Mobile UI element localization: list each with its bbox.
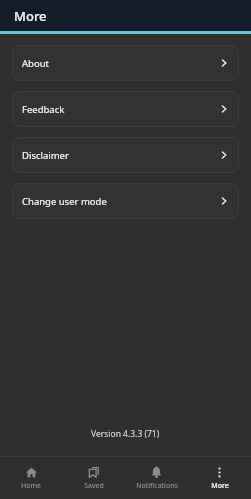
staticText: Version 4.3.3 (71): [91, 428, 160, 440]
button[interactable]: Change user mode: [12, 183, 239, 219]
staticText: Notifications: [136, 481, 178, 491]
staticText: Feedback: [22, 103, 219, 116]
staticText: Saved: [84, 481, 104, 491]
button[interactable]: Saved: [62, 457, 125, 499]
staticText: Change user mode: [22, 195, 219, 208]
button[interactable]: About: [12, 45, 239, 81]
button[interactable]: More: [188, 457, 251, 499]
staticText: Disclaimer: [22, 149, 219, 162]
staticText: More: [211, 481, 229, 491]
staticText: About: [22, 57, 219, 70]
staticText: Home: [21, 481, 41, 491]
button[interactable]: Notifications: [125, 457, 188, 499]
button[interactable]: Disclaimer: [12, 137, 239, 173]
button[interactable]: Home: [0, 457, 62, 499]
button[interactable]: Feedback: [12, 91, 239, 127]
staticText: More: [14, 7, 47, 25]
